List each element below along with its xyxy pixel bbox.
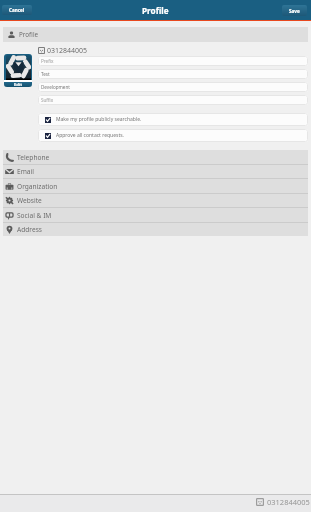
button[interactable]: Social & IM [3, 208, 308, 222]
staticText: Cancel [9, 7, 25, 13]
button[interactable]: Organization [3, 179, 308, 193]
staticText: Telephone [17, 153, 50, 162]
staticText: Save [289, 8, 300, 14]
button[interactable]: Approve all contact requests. [38, 129, 308, 142]
button[interactable]: Profile [3, 27, 308, 42]
staticText: Profile [19, 30, 39, 39]
staticText: Edit [14, 82, 23, 87]
button[interactable]: Address [3, 223, 308, 236]
staticText: Website [17, 196, 42, 205]
staticText: Address [17, 225, 42, 234]
staticText: Make my profile publicly searchable. [56, 116, 142, 123]
button[interactable]: Suffix [38, 95, 308, 105]
button[interactable]: 0312844005 [0, 495, 311, 512]
staticText: Email [17, 167, 34, 176]
staticText: Suffix [41, 97, 54, 103]
button[interactable]: Prefix [38, 56, 308, 66]
staticText: Social & IM [17, 211, 52, 220]
button[interactable]: Test [38, 69, 308, 79]
button[interactable]: Save [282, 5, 307, 16]
button[interactable]: Cancel [2, 5, 32, 15]
staticText: Profile [142, 5, 169, 16]
staticText: Test [41, 71, 50, 77]
button[interactable]: Development [38, 82, 308, 92]
staticText: Organization [17, 182, 58, 191]
staticText: 0312844005 [47, 46, 88, 56]
staticText: 0312844005 [267, 497, 310, 507]
staticText: Development [41, 84, 70, 90]
button[interactable]: Email [3, 165, 308, 178]
staticText: Prefix [41, 58, 54, 64]
button[interactable]: Telephone [3, 150, 308, 164]
button[interactable]: Make my profile publicly searchable. [38, 113, 308, 126]
button[interactable]: Website [3, 194, 308, 207]
staticText: Approve all contact requests. [56, 132, 124, 139]
button[interactable]: Edit profile photo [4, 54, 32, 87]
